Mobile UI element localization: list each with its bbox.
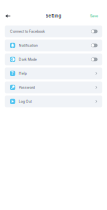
staticText: ? (11, 71, 14, 76)
staticText: Setting (45, 13, 61, 19)
button[interactable]: Connect to Facebook (5, 25, 102, 37)
button[interactable]: Back (0, 10, 14, 22)
button[interactable]: Notification (5, 39, 102, 51)
staticText: Help (19, 71, 27, 75)
staticText: Save (90, 14, 98, 18)
button[interactable]: Dark Mode (5, 53, 102, 65)
staticText: Dark Mode (19, 57, 37, 61)
staticText: Log Out (19, 99, 32, 103)
staticText: Notification (19, 43, 38, 47)
staticText: Connect to Facebook (10, 29, 45, 33)
button[interactable]: Log Out (5, 95, 102, 107)
button[interactable]: ? (5, 67, 102, 79)
button[interactable]: Save (86, 10, 107, 22)
staticText: Password (19, 85, 35, 89)
button[interactable]: Password (5, 81, 102, 93)
